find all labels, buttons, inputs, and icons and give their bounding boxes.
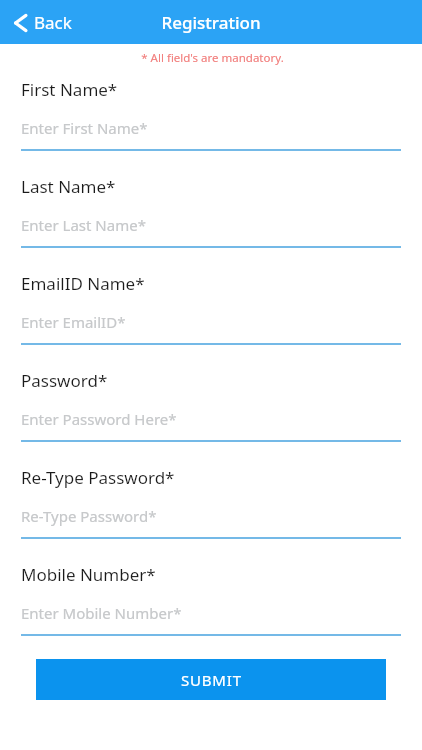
staticText: * All field's are mandatory. — [141, 50, 284, 66]
button[interactable]: Enter Last Name* — [0, 215, 422, 248]
staticText: EmailID Name* — [21, 272, 145, 295]
staticText: Registration — [161, 11, 261, 34]
button[interactable]: SUBMIT — [36, 659, 386, 700]
button[interactable]: Back — [12, 5, 74, 40]
staticText: Enter EmailID* — [21, 312, 126, 332]
staticText: Enter Mobile Number* — [21, 603, 182, 623]
staticText: Mobile Number* — [21, 563, 156, 586]
staticText: Re-Type Password* — [21, 466, 175, 489]
button[interactable]: Enter Password Here* — [0, 409, 422, 442]
staticText: Enter Password Here* — [21, 409, 177, 429]
button[interactable]: Re-Type Password* — [0, 506, 422, 539]
staticText: Back — [34, 11, 72, 34]
staticText: Last Name* — [21, 175, 116, 198]
button[interactable]: Enter First Name* — [0, 118, 422, 151]
staticText: SUBMIT — [181, 670, 242, 690]
staticText: First Name* — [21, 78, 118, 101]
staticText: Password* — [21, 369, 108, 392]
staticText: Enter First Name* — [21, 118, 148, 138]
button[interactable]: Enter EmailID* — [0, 312, 422, 345]
staticText: Re-Type Password* — [21, 506, 157, 526]
button[interactable]: Enter Mobile Number* — [0, 603, 422, 636]
staticText: Enter Last Name* — [21, 215, 146, 235]
